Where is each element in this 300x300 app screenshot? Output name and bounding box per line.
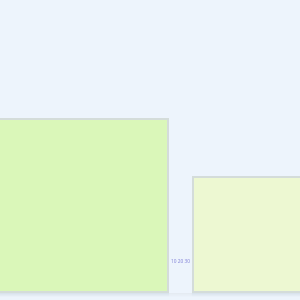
staticText: 10 20 30 — [171, 258, 190, 265]
button[interactable]: Secondary card — [192, 176, 300, 293]
button[interactable]: Primary card — [0, 118, 169, 293]
